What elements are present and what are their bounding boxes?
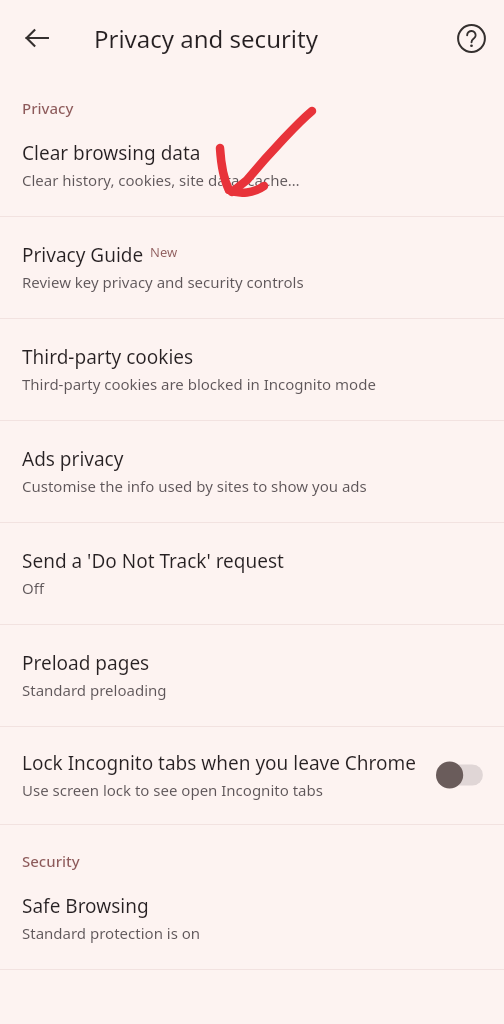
staticText: Privacy Guide: [22, 242, 144, 268]
button[interactable]: Clear browsing data: [0, 140, 504, 216]
staticText: Send a 'Do Not Track' request: [22, 548, 284, 574]
staticText: Customise the info used by sites to show…: [22, 476, 367, 496]
button[interactable]: Help: [447, 14, 495, 62]
staticText: Third-party cookies: [22, 344, 194, 370]
staticText: Use screen lock to see open Incognito ta…: [22, 780, 323, 800]
button[interactable]: Back: [13, 14, 61, 62]
staticText: Privacy: [22, 98, 74, 118]
staticText: Safe Browsing: [22, 893, 149, 919]
staticText: Off: [22, 578, 45, 598]
button[interactable]: Third-party cookies: [0, 319, 504, 420]
staticText: Clear history, cookies, site data, cache…: [22, 170, 300, 190]
staticText: Preload pages: [22, 650, 150, 676]
button[interactable]: Send a 'Do Not Track' request: [0, 523, 504, 624]
staticText: Third-party cookies are blocked in Incog…: [22, 374, 376, 394]
staticText: Ads privacy: [22, 446, 124, 472]
button[interactable]: Lock Incognito tabs toggle: [434, 758, 486, 792]
button[interactable]: Preload pages: [0, 625, 504, 726]
staticText: New: [150, 243, 178, 261]
staticText: Privacy and security: [94, 22, 318, 55]
button[interactable]: Privacy Guide: [0, 217, 504, 318]
staticText: Lock Incognito tabs when you leave Chrom…: [22, 750, 417, 776]
staticText: Security: [22, 851, 80, 871]
button[interactable]: Lock Incognito tabs when you leave Chrom…: [0, 727, 504, 824]
staticText: Standard protection is on: [22, 923, 201, 943]
staticText: Clear browsing data: [22, 140, 201, 166]
button[interactable]: Safe Browsing: [0, 893, 504, 969]
staticText: Standard preloading: [22, 680, 167, 700]
button[interactable]: Ads privacy: [0, 421, 504, 522]
staticText: Review key privacy and security controls: [22, 272, 304, 292]
